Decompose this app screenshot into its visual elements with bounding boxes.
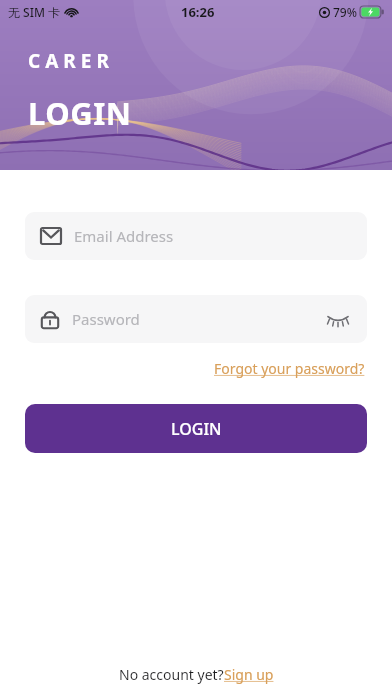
- staticText: 无 SIM 卡: [8, 4, 61, 20]
- staticText: Sign up: [224, 665, 274, 684]
- staticText: No account yet?: [119, 665, 224, 684]
- staticText: Email Address: [74, 226, 174, 246]
- staticText: Password: [72, 309, 140, 329]
- staticText: 16:26: [181, 3, 215, 21]
- button[interactable]: Email Address: [25, 212, 367, 260]
- staticText: 79%: [333, 4, 357, 20]
- staticText: LOGIN: [28, 92, 132, 134]
- button[interactable]: Sign up: [224, 665, 274, 684]
- button[interactable]: LOGIN: [25, 404, 367, 453]
- button[interactable]: Forgot your password?: [212, 355, 367, 382]
- button[interactable]: Show password: [325, 306, 351, 332]
- staticText: CARER: [28, 48, 114, 74]
- staticText: Forgot your password?: [214, 359, 365, 378]
- staticText: LOGIN: [171, 418, 222, 440]
- button[interactable]: Password: [25, 295, 367, 343]
